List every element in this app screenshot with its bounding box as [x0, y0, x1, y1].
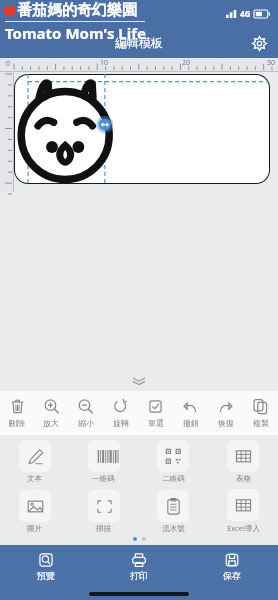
button[interactable]: 表格 — [208, 440, 278, 483]
button[interactable]: 打印 — [92, 545, 185, 588]
staticText: 掃描 — [96, 524, 111, 533]
staticText: 恢復 — [218, 418, 234, 428]
staticText: 文本 — [27, 474, 42, 483]
button[interactable]: 單選 — [138, 391, 173, 435]
staticText: 圖片 — [27, 524, 42, 533]
button[interactable]: 一維碼 — [69, 440, 138, 483]
button[interactable]: 流水號 — [138, 490, 208, 533]
button[interactable]: 恢復 — [208, 391, 243, 435]
button[interactable]: 撤銷 — [173, 391, 208, 435]
button[interactable]: 複製 — [243, 391, 278, 435]
staticText: Excel導入 — [227, 523, 260, 533]
button[interactable]: 文本 — [0, 440, 69, 483]
button[interactable]: 縮小 — [68, 391, 103, 435]
button[interactable]: 圖片 — [0, 490, 69, 533]
button[interactable]: Excel導入 — [208, 489, 278, 533]
staticText: 複製 — [253, 418, 269, 428]
staticText: 20 — [182, 58, 191, 68]
staticText: 縮小 — [78, 418, 94, 428]
staticText: 撤銷 — [183, 418, 199, 428]
button[interactable]: 旋轉 — [103, 391, 138, 435]
button[interactable] — [14, 74, 270, 184]
button[interactable]: 二維碼 — [138, 440, 208, 483]
button[interactable]: Settings — [246, 30, 272, 56]
staticText: 放大 — [43, 418, 59, 428]
staticText: 編輯模板 — [115, 35, 163, 50]
button[interactable]: 預覽 — [0, 545, 92, 588]
staticText: 刪除 — [9, 418, 25, 428]
staticText: 0 — [6, 59, 11, 69]
staticText: 二維碼 — [162, 474, 185, 483]
button[interactable]: 掃描 — [69, 490, 138, 533]
button[interactable]: 刪除 — [0, 391, 34, 435]
staticText: 4G — [240, 8, 251, 19]
button[interactable]: 放大 — [34, 391, 68, 435]
staticText: 流水號 — [162, 524, 185, 533]
staticText: 打印 — [130, 570, 148, 581]
button[interactable]: Collapse — [0, 371, 278, 391]
staticText: 30 — [267, 58, 276, 68]
staticText: 表格 — [236, 474, 251, 483]
staticText: 10 — [100, 58, 109, 68]
button[interactable]: 保存 — [185, 545, 278, 588]
staticText: 一維碼 — [92, 474, 115, 483]
staticText: 單選 — [148, 418, 164, 428]
staticText: 番茄媽的奇幻樂園 — [17, 1, 137, 20]
staticText: 保存 — [223, 570, 241, 581]
staticText: Tomato Mom's Life — [5, 23, 146, 43]
staticText: 預覽 — [37, 570, 55, 581]
staticText: 旋轉 — [113, 418, 129, 428]
